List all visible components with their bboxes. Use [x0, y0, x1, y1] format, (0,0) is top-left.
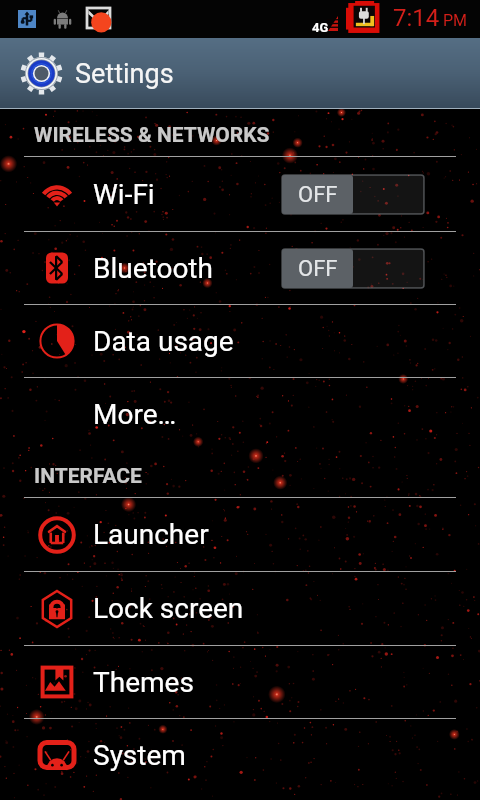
button[interactable]: Themes — [0, 645, 480, 718]
staticText: Launcher — [93, 518, 209, 551]
staticText: Bluetooth — [93, 252, 213, 285]
staticText: Settings — [75, 58, 174, 90]
staticText: 7:14 — [393, 4, 440, 32]
staticText: INTERFACE — [34, 464, 142, 489]
button[interactable]: Wi-Fi — [0, 156, 480, 231]
button[interactable]: Bluetooth — [0, 231, 480, 304]
button[interactable]: System — [0, 718, 480, 791]
staticText: WIRELESS & NETWORKS — [34, 123, 270, 148]
staticText: Wi-Fi — [93, 178, 155, 211]
staticText: OFF — [298, 256, 338, 282]
button[interactable]: Launcher — [0, 497, 480, 571]
button[interactable]: More… — [0, 377, 480, 450]
button[interactable]: Lock screen — [0, 571, 480, 645]
staticText: 4G — [312, 20, 329, 35]
staticText: More… — [93, 398, 177, 431]
staticText: System — [93, 739, 186, 772]
button[interactable]: Toggle off — [282, 175, 424, 214]
staticText: Lock screen — [93, 592, 244, 625]
staticText: Themes — [93, 666, 194, 699]
button[interactable]: Toggle off — [282, 249, 424, 288]
staticText: Data usage — [93, 325, 234, 358]
button[interactable]: Data usage — [0, 304, 480, 377]
staticText: OFF — [298, 182, 338, 208]
staticText: PM — [443, 11, 468, 30]
